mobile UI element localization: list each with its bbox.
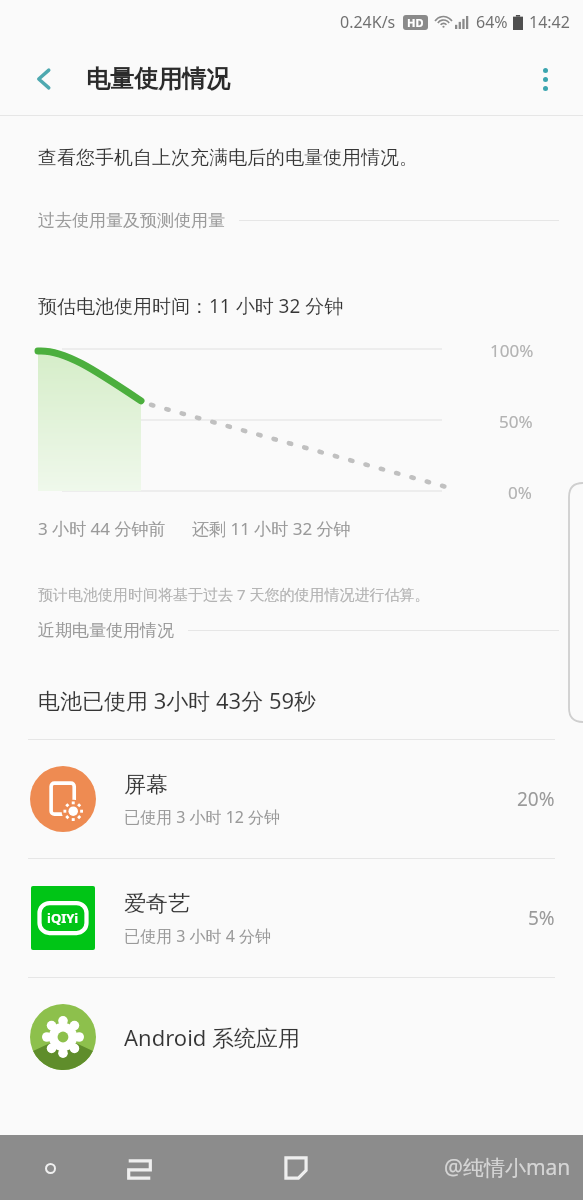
staticText: 已使用 3 小时 12 分钟 bbox=[124, 806, 281, 828]
staticText: 已使用 3 小时 4 分钟 bbox=[124, 925, 271, 947]
staticText: 100% bbox=[490, 339, 534, 362]
button[interactable]: iQIYi bbox=[0, 859, 583, 977]
button[interactable]: 屏幕 bbox=[0, 740, 583, 858]
staticText: iQIYi bbox=[47, 909, 79, 927]
staticText: 14:42 bbox=[529, 11, 570, 33]
button[interactable]: Home bbox=[267, 1139, 325, 1197]
staticText: 爱奇艺 bbox=[124, 890, 190, 918]
staticText: 预估电池使用时间：11 小时 32 分钟 bbox=[38, 293, 344, 319]
button[interactable]: Back bbox=[20, 1138, 80, 1198]
staticText: 还剩 11 小时 32 分钟 bbox=[192, 517, 351, 540]
staticText: 5% bbox=[528, 905, 555, 931]
staticText: 近期电量使用情况 bbox=[38, 620, 174, 641]
staticText: 预计电池使用时间将基于过去 7 天您的使用情况进行估算。 bbox=[38, 584, 430, 604]
staticText: 50% bbox=[499, 410, 533, 433]
button[interactable]: Android 系统应用 bbox=[0, 978, 583, 1096]
button[interactable]: Recents bbox=[110, 1139, 168, 1197]
button[interactable]: More options bbox=[517, 51, 573, 107]
staticText: 过去使用量及预测使用量 bbox=[38, 210, 225, 231]
staticText: 电池已使用 3小时 43分 59秒 bbox=[38, 685, 317, 715]
staticText: HD bbox=[407, 15, 424, 30]
staticText: @纯情小man bbox=[444, 1153, 571, 1182]
staticText: 查看您手机自上次充满电后的电量使用情况。 bbox=[38, 146, 418, 170]
staticText: 64% bbox=[476, 11, 508, 33]
staticText: 0% bbox=[508, 481, 532, 504]
staticText: 0.24K/s bbox=[340, 11, 396, 33]
staticText: 屏幕 bbox=[124, 771, 168, 799]
staticText: 20% bbox=[517, 786, 555, 812]
staticText: Android 系统应用 bbox=[124, 1022, 301, 1052]
staticText: 电量使用情况 bbox=[86, 64, 230, 94]
staticText: 3 小时 44 分钟前 bbox=[38, 517, 166, 540]
button[interactable]: Back bbox=[16, 51, 72, 107]
